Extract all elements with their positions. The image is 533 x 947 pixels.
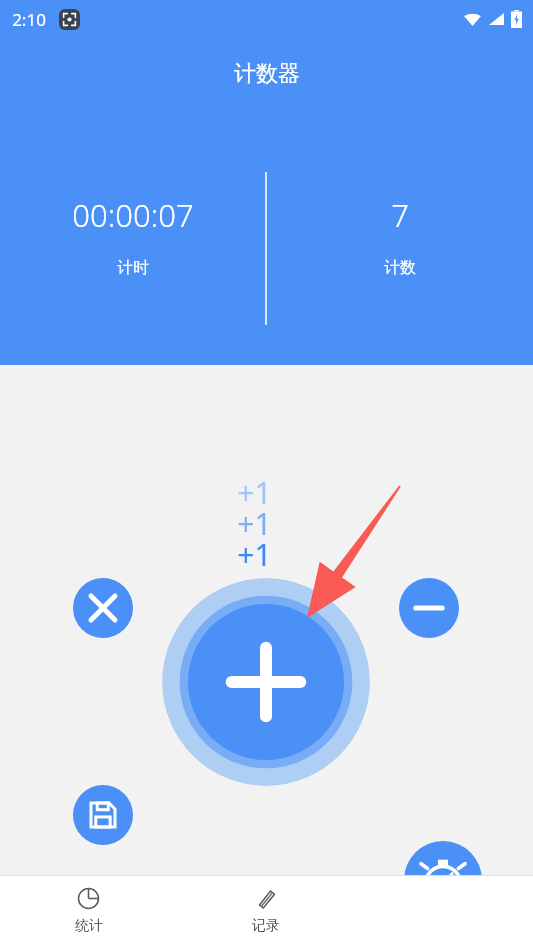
button[interactable]: 记录 (177, 876, 355, 947)
button[interactable]: 统计 (0, 876, 177, 947)
button[interactable]: Decrease count (399, 578, 459, 638)
button[interactable]: Timer (404, 841, 482, 919)
staticText: 记录 (252, 917, 280, 935)
staticText: 2:10 (12, 8, 46, 31)
staticText: 00:00:07 (72, 194, 194, 236)
button[interactable]: Reset (73, 578, 133, 638)
staticText: +1 (237, 472, 272, 513)
staticText: +1 (237, 534, 272, 575)
button[interactable]: Save (73, 785, 133, 845)
staticText: 7 (391, 194, 409, 236)
button[interactable]: Increase count (162, 578, 370, 786)
staticText: 统计 (75, 917, 103, 935)
staticText: 计时 (117, 258, 149, 278)
staticText: +1 (237, 503, 272, 544)
staticText: 计数器 (234, 60, 300, 88)
staticText: 计数 (384, 258, 416, 278)
